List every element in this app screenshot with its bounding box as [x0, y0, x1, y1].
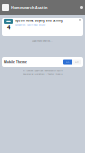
staticText: 4: [7, 23, 10, 31]
staticText: Homesearch Austin: [11, 5, 47, 10]
staticText: Mobile Theme: [4, 60, 27, 64]
staticText: Powered by WordPress | Theme: mobile: [22, 73, 62, 75]
staticText: On: [66, 60, 69, 63]
button[interactable]: On: [63, 59, 72, 64]
staticText: All content Copyright Homesearch Austin: [22, 69, 62, 72]
staticText: Tips on Home Buying and Selling: [15, 19, 63, 22]
button[interactable]: Load more entries...: [2, 38, 83, 43]
button[interactable]: 4: [2, 18, 83, 36]
staticText: Categories: Austin Real Estate: [15, 23, 45, 26]
button[interactable]: Menu: [2, 4, 9, 11]
button[interactable]: Off: [72, 59, 81, 64]
button[interactable]: Search: [80, 6, 83, 9]
staticText: Load more entries...: [32, 39, 53, 42]
staticText: Off: [75, 60, 78, 63]
